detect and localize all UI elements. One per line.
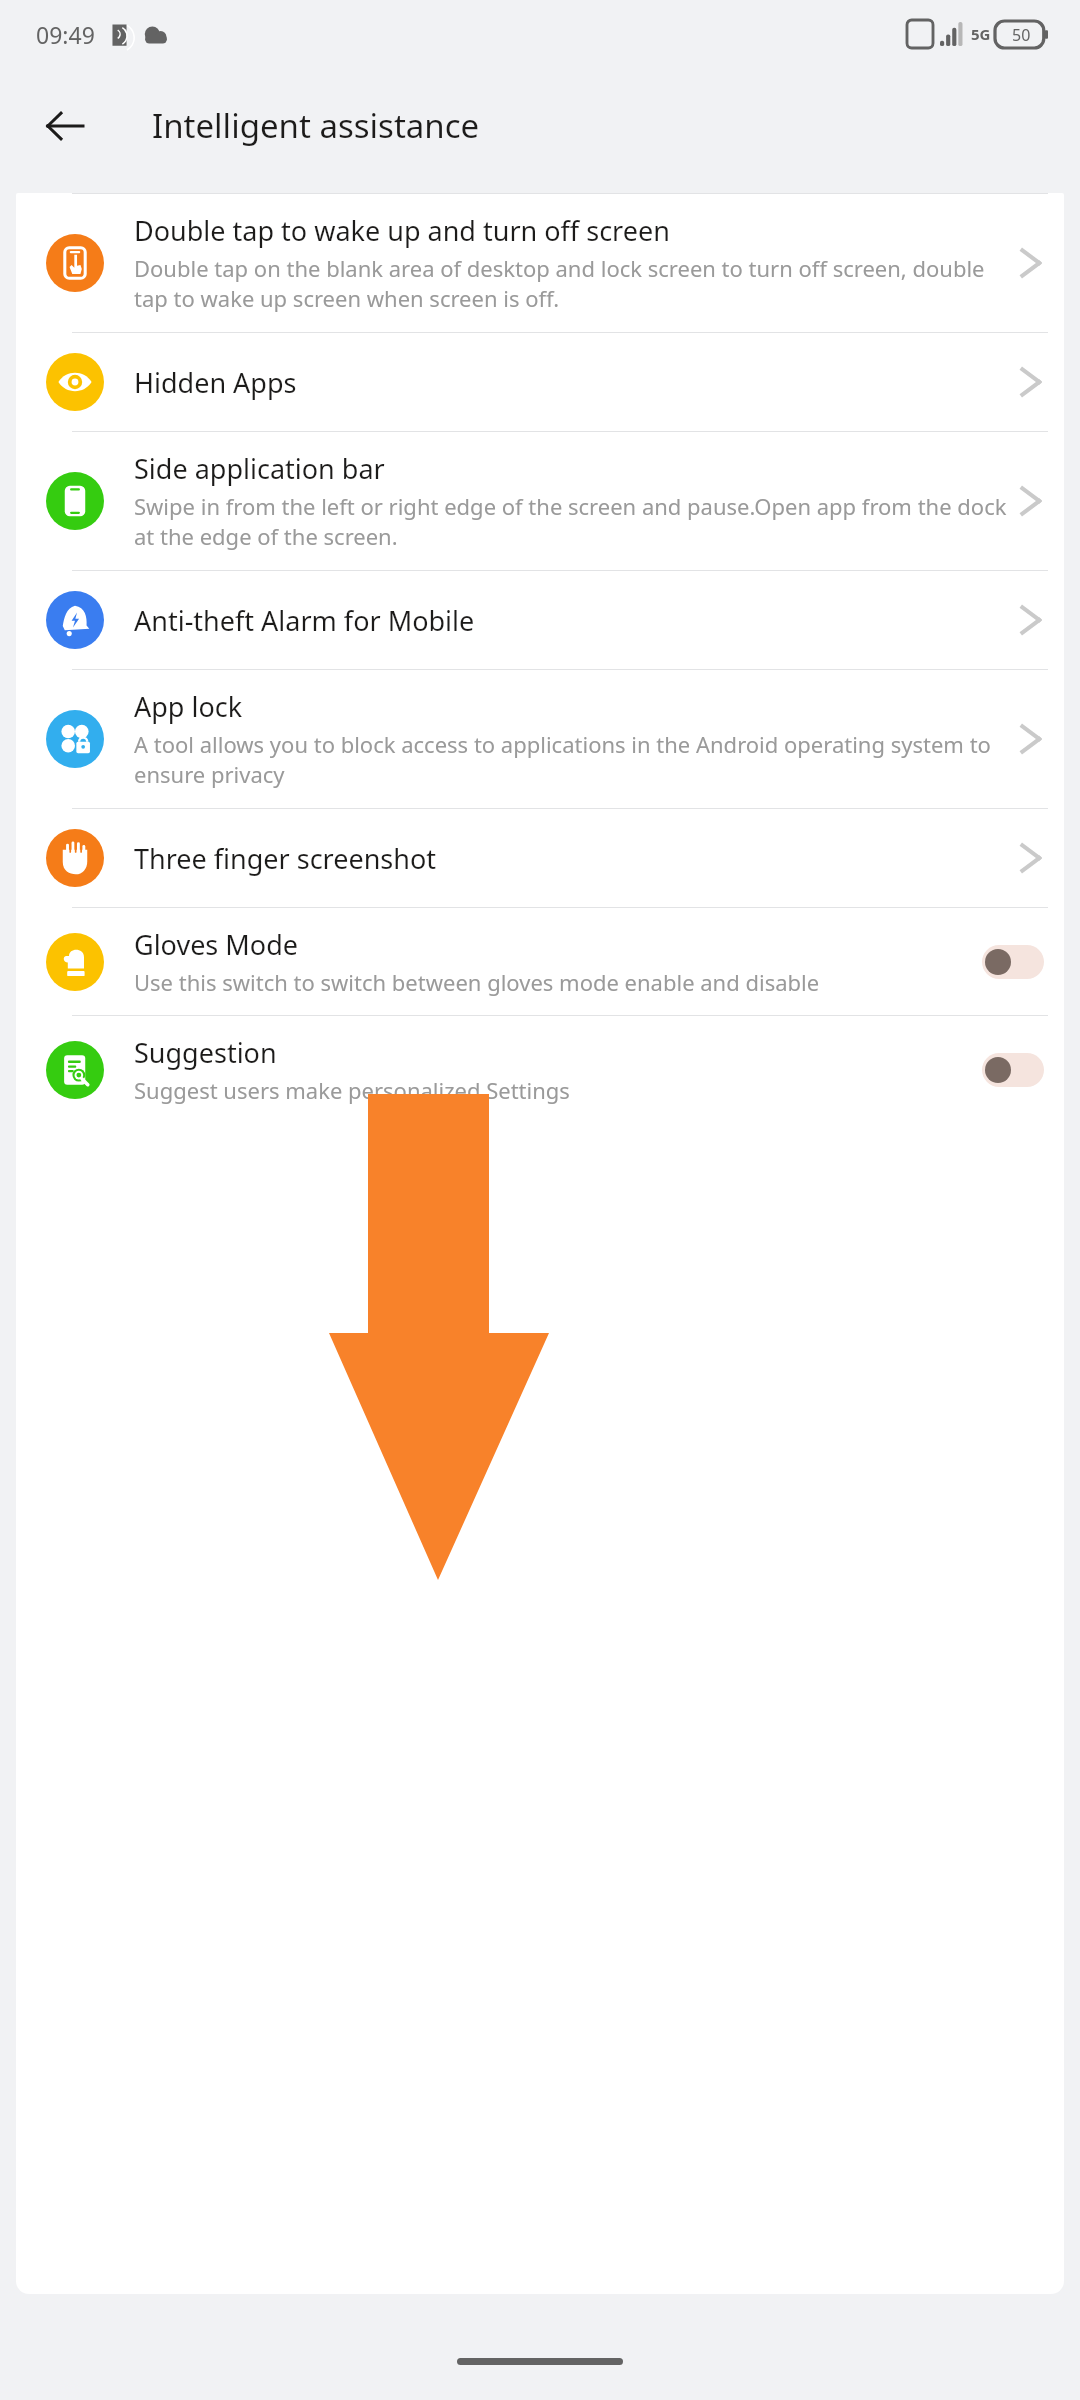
staticText: 09:49 <box>36 19 95 50</box>
button[interactable]: Three finger screenshot <box>16 809 1064 907</box>
staticText: App lock <box>134 688 243 725</box>
button[interactable]: Toggle off <box>982 945 1044 979</box>
staticText: 5G <box>971 24 991 44</box>
staticText: Suggest users make personalized Settings <box>134 1075 570 1105</box>
staticText: 50 <box>1012 24 1031 46</box>
staticText: Gloves Mode <box>134 926 298 963</box>
staticText: A tool allows you to block access to app… <box>134 729 1008 790</box>
button[interactable]: Side application bar <box>16 432 1064 570</box>
button[interactable]: Anti-theft Alarm for Mobile <box>16 571 1064 669</box>
staticText: Swipe in from the left or right edge of … <box>134 491 1008 552</box>
staticText: Double tap to wake up and turn off scree… <box>134 212 670 249</box>
button[interactable]: Suggestion <box>16 1016 1064 1123</box>
button[interactable]: App lock <box>16 670 1064 808</box>
button[interactable]: Toggle off <box>982 1053 1044 1087</box>
button[interactable]: Double tap to wake up and turn off scree… <box>16 194 1064 332</box>
staticText: Side application bar <box>134 450 385 487</box>
staticText: Double tap on the blank area of desktop … <box>134 253 1008 314</box>
staticText: Hidden Apps <box>134 364 297 401</box>
staticText: Intelligent assistance <box>152 103 480 148</box>
staticText: Use this switch to switch between gloves… <box>134 967 820 997</box>
button[interactable]: Back <box>36 97 94 155</box>
button[interactable]: Hidden Apps <box>16 333 1064 431</box>
staticText: Three finger screenshot <box>134 840 437 877</box>
button[interactable]: Gloves Mode <box>16 908 1064 1015</box>
staticText: Suggestion <box>134 1034 277 1071</box>
staticText: Anti-theft Alarm for Mobile <box>134 602 475 639</box>
